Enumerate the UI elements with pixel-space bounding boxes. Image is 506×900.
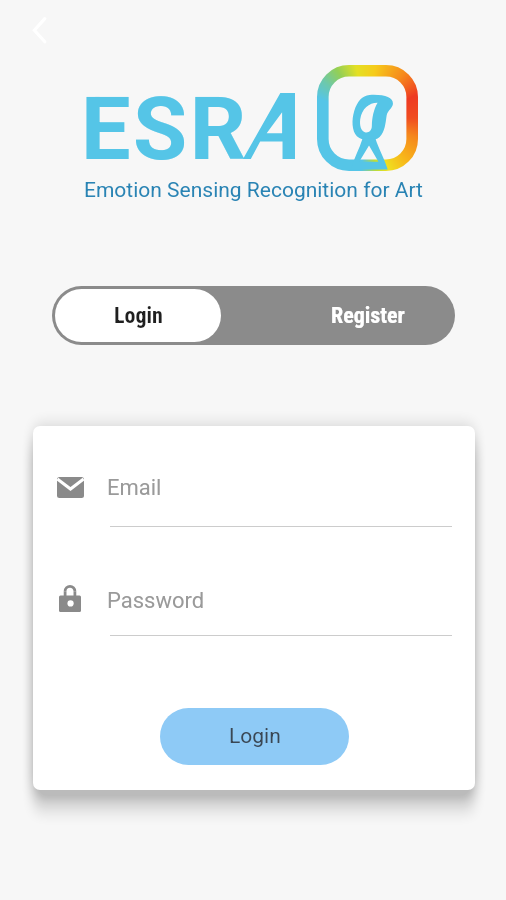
staticText: Emotion Sensing Recognition for Art (84, 178, 423, 203)
staticText: Register (331, 303, 405, 329)
staticText: Email (107, 475, 162, 501)
staticText: Login (229, 724, 281, 749)
button[interactable]: Login (160, 708, 349, 765)
staticText: ESR (81, 77, 249, 180)
staticText: Password (107, 588, 205, 614)
button[interactable]: Register (224, 286, 455, 345)
staticText: Login (114, 303, 163, 329)
button[interactable]: Login (55, 289, 221, 342)
